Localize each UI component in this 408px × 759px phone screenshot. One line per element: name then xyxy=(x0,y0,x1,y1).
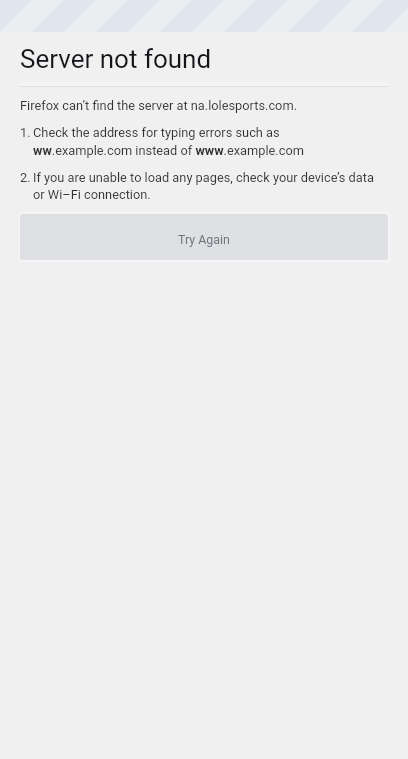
staticText: Firefox can’t find the server at na.lole… xyxy=(20,98,298,113)
staticText: Check the address for typing errors such… xyxy=(33,125,280,140)
staticText: or Wi–Fi connection. xyxy=(33,187,151,202)
staticText: ww.example.com instead of www.example.co… xyxy=(33,143,304,158)
staticText: Try Again xyxy=(178,232,230,247)
staticText: If you are unable to load any pages, che… xyxy=(33,170,374,185)
staticText: 1. xyxy=(20,125,31,140)
staticText: 2. xyxy=(20,170,31,185)
button[interactable]: Try Again xyxy=(20,214,388,260)
staticText: Server not found xyxy=(20,44,212,74)
